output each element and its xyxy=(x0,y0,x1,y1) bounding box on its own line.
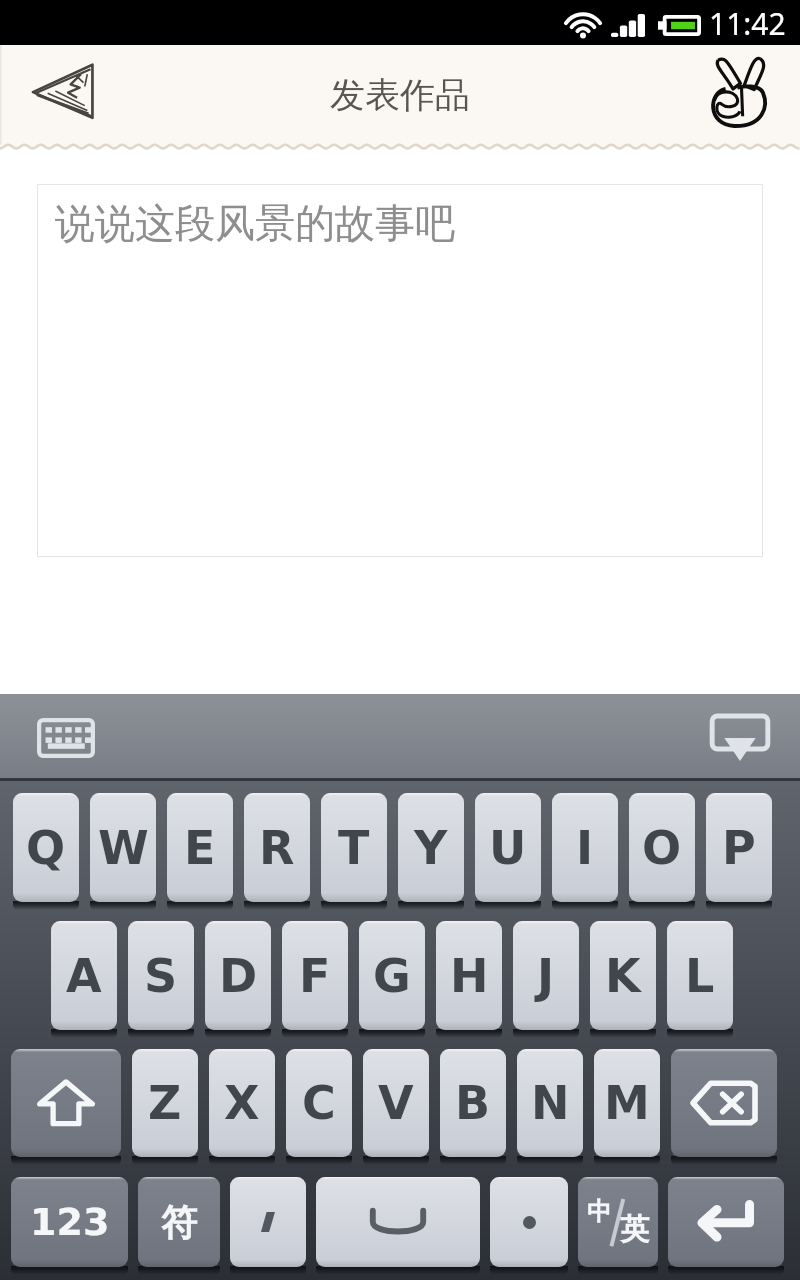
button[interactable]: S xyxy=(128,921,194,1030)
button[interactable]: 符 xyxy=(138,1177,220,1267)
staticText: N xyxy=(531,1076,570,1130)
button[interactable]: O xyxy=(629,793,695,902)
staticText: R xyxy=(259,821,295,875)
button[interactable]: Z xyxy=(132,1049,198,1157)
button[interactable]: Switch input method xyxy=(30,712,102,764)
staticText: O xyxy=(642,821,682,875)
button[interactable]: Backspace xyxy=(671,1049,777,1157)
button[interactable]: G xyxy=(359,921,425,1030)
button[interactable]: Shift xyxy=(11,1049,121,1157)
staticText: A xyxy=(66,949,102,1003)
staticText: 中 xyxy=(587,1196,612,1227)
button[interactable]: Y xyxy=(398,793,464,902)
staticText: 符 xyxy=(161,1200,197,1245)
staticText: M xyxy=(604,1076,650,1130)
staticText: I xyxy=(576,821,594,875)
staticText: P xyxy=(722,821,756,875)
button[interactable]: N xyxy=(517,1049,583,1157)
button[interactable]: E xyxy=(167,793,233,902)
button[interactable]: T xyxy=(321,793,387,902)
staticText: Z xyxy=(148,1076,182,1130)
button[interactable]: V xyxy=(363,1049,429,1157)
button[interactable]: R xyxy=(244,793,310,902)
button[interactable]: Back xyxy=(0,45,125,137)
button[interactable]: Enter xyxy=(668,1177,784,1267)
staticText: L xyxy=(685,949,715,1003)
button[interactable]: H xyxy=(436,921,502,1030)
button[interactable]: Comma xyxy=(230,1177,306,1267)
staticText: G xyxy=(373,949,411,1003)
staticText: 123 xyxy=(30,1200,110,1244)
staticText: J xyxy=(537,949,555,1003)
staticText: 说说这段风景的故事吧 xyxy=(55,198,455,248)
staticText: X xyxy=(224,1076,260,1130)
button[interactable]: Hide keyboard xyxy=(704,711,776,765)
button[interactable]: Period xyxy=(490,1177,568,1267)
button[interactable]: 123 xyxy=(11,1177,128,1267)
button[interactable]: F xyxy=(282,921,348,1030)
button[interactable]: X xyxy=(209,1049,275,1157)
button[interactable]: 说说这段风景的故事吧 xyxy=(37,184,763,557)
staticText: F xyxy=(299,949,331,1003)
staticText: D xyxy=(219,949,258,1003)
button[interactable]: I xyxy=(552,793,618,902)
staticText: S xyxy=(144,949,178,1003)
button[interactable]: P xyxy=(706,793,772,902)
button[interactable]: U xyxy=(475,793,541,902)
button[interactable]: Space xyxy=(316,1177,480,1267)
button[interactable]: A xyxy=(51,921,117,1030)
button[interactable]: Chinese English toggle xyxy=(578,1177,658,1267)
staticText: Y xyxy=(414,821,448,875)
button[interactable]: K xyxy=(590,921,656,1030)
button[interactable]: M xyxy=(594,1049,660,1157)
button[interactable]: J xyxy=(513,921,579,1030)
staticText: T xyxy=(338,821,370,875)
staticText: U xyxy=(489,821,527,875)
staticText: C xyxy=(302,1076,336,1130)
staticText: E xyxy=(184,821,216,875)
button[interactable]: C xyxy=(286,1049,352,1157)
staticText: 发表作品 xyxy=(330,73,470,117)
button[interactable]: L xyxy=(667,921,733,1030)
staticText: 英 xyxy=(620,1211,649,1248)
button[interactable]: Publish xyxy=(675,45,800,137)
staticText: B xyxy=(455,1076,491,1130)
button[interactable]: Q xyxy=(13,793,79,902)
button[interactable]: W xyxy=(90,793,156,902)
staticText: H xyxy=(450,949,489,1003)
staticText: Q xyxy=(26,821,66,875)
staticText: V xyxy=(378,1076,414,1130)
button[interactable]: B xyxy=(440,1049,506,1157)
button[interactable]: D xyxy=(205,921,271,1030)
staticText: K xyxy=(605,949,641,1003)
staticText: 11:42 xyxy=(709,3,786,44)
staticText: W xyxy=(98,821,149,875)
